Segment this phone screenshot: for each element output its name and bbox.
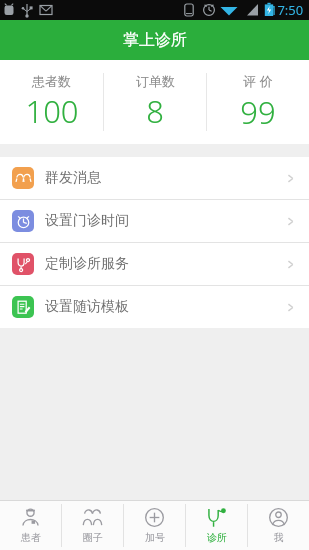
button[interactable]: 患者 xyxy=(0,501,61,550)
staticText: 99 xyxy=(240,91,276,133)
staticText: 100 xyxy=(25,90,79,132)
staticText: 17:50 xyxy=(270,1,304,19)
staticText: 群发消息 xyxy=(45,169,101,187)
button[interactable]: 我 xyxy=(248,501,309,550)
button[interactable]: 订单数 xyxy=(104,60,206,144)
staticText: 圈子 xyxy=(83,531,103,544)
button[interactable]: 加号 xyxy=(124,501,185,550)
staticText: 设置门诊时间 xyxy=(45,212,129,230)
staticText: 8 xyxy=(146,90,164,132)
staticText: 患者 xyxy=(21,531,41,544)
staticText: 订单数 xyxy=(136,73,175,89)
button[interactable]: 定制诊所服务 xyxy=(0,243,309,285)
button[interactable]: 设置随访模板 xyxy=(0,286,309,328)
button[interactable]: 患者数 xyxy=(0,60,103,144)
staticText: 定制诊所服务 xyxy=(45,255,129,273)
button[interactable]: 圈子 xyxy=(62,501,123,550)
staticText: 患者数 xyxy=(32,73,71,89)
staticText: 加号 xyxy=(145,531,165,544)
staticText: 设置随访模板 xyxy=(45,298,129,316)
button[interactable]: 诊所 xyxy=(186,501,247,550)
button[interactable]: 设置门诊时间 xyxy=(0,200,309,242)
button[interactable]: 群发消息 xyxy=(0,157,309,199)
staticText: 评 价 xyxy=(243,72,273,90)
staticText: 诊所 xyxy=(207,531,227,544)
staticText: 我 xyxy=(274,531,284,544)
staticText: 掌上诊所 xyxy=(123,30,187,50)
button[interactable]: 评 价 xyxy=(207,60,309,144)
